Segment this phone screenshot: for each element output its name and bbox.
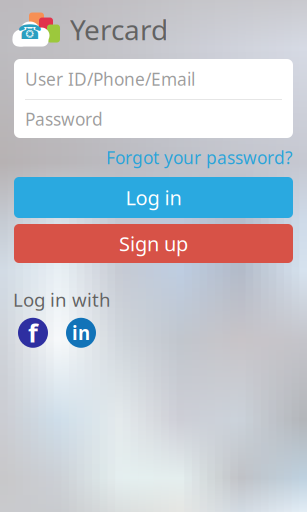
staticText: f (28, 316, 38, 350)
button[interactable]: Log in (14, 177, 293, 218)
button[interactable]: Sign up (14, 224, 293, 263)
staticText: Sign up (119, 230, 188, 257)
staticText: ☎ (17, 21, 42, 43)
button[interactable]: Password (14, 100, 293, 138)
button[interactable]: Forgot your password? (106, 146, 293, 169)
staticText: Password (25, 107, 103, 130)
button[interactable]: User ID/Phone/Email (14, 59, 293, 99)
staticText: Log in (125, 184, 181, 211)
staticText: in (72, 320, 90, 345)
button[interactable]: Log in with Facebook (18, 318, 48, 348)
staticText: Forgot your password? (106, 146, 293, 169)
button[interactable]: Log in with LinkedIn (66, 318, 96, 348)
staticText: Yercard (70, 11, 168, 48)
staticText: Log in with (13, 287, 111, 312)
staticText: User ID/Phone/Email (25, 67, 195, 90)
